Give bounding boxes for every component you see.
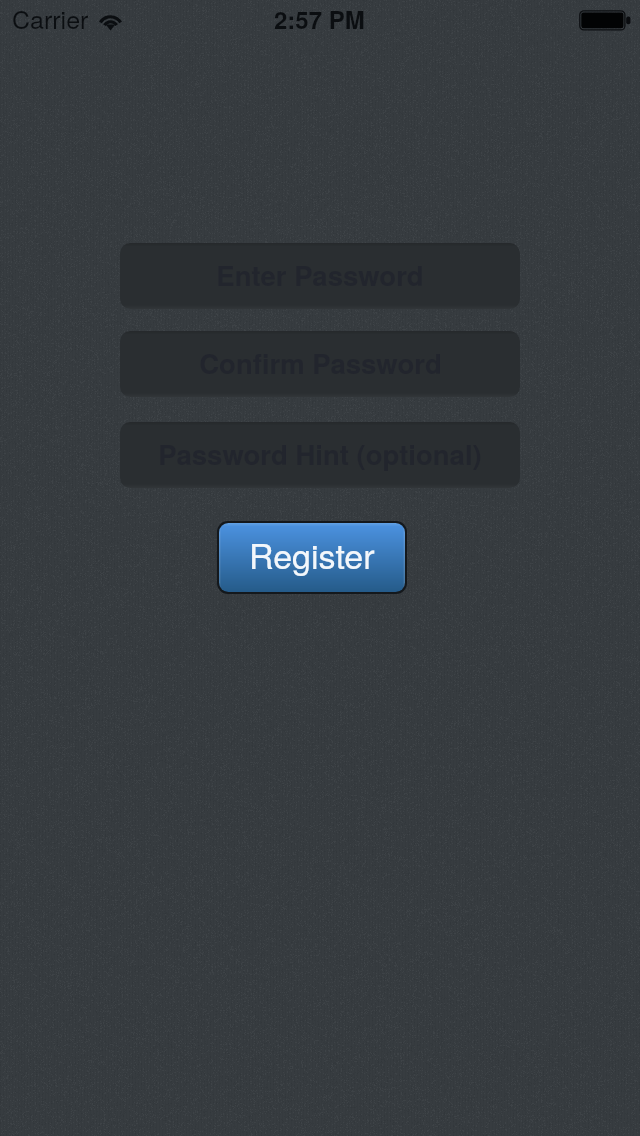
staticText: Confirm Password xyxy=(199,343,442,382)
other: Battery xyxy=(579,10,631,31)
staticText: Enter Password xyxy=(216,255,424,294)
staticText: 2:57 PM xyxy=(274,2,365,36)
staticText: Password Hint (optional) xyxy=(158,434,482,473)
button[interactable]: Register xyxy=(219,523,405,592)
staticText: Register xyxy=(249,530,375,579)
staticText: Carrier xyxy=(12,0,89,36)
other: Wi-Fi signal xyxy=(98,8,123,30)
button[interactable]: Password Hint (optional) xyxy=(120,422,520,488)
